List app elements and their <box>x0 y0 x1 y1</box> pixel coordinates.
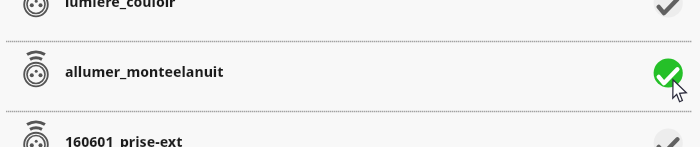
staticText: 160601_prise-ext <box>65 132 183 147</box>
button[interactable]: allumer_monteelanuit <box>0 41 700 111</box>
button[interactable]: lumiere_couloir <box>0 0 700 41</box>
staticText: allumer_monteelanuit <box>65 62 224 81</box>
button[interactable]: 160601_prise-ext <box>0 111 700 147</box>
other: cursor <box>0 0 700 147</box>
staticText: lumiere_couloir <box>65 0 176 11</box>
